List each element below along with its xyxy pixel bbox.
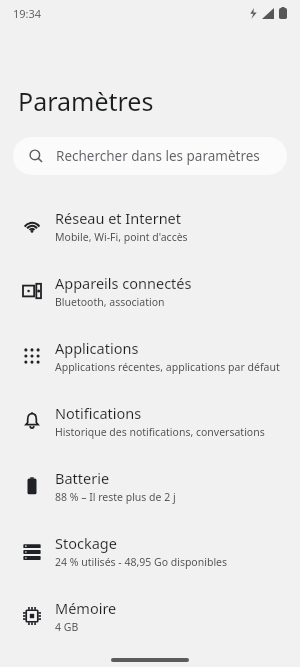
- staticText: Appareils connectés: [55, 273, 192, 293]
- staticText: Mémoire: [55, 598, 117, 618]
- staticText: 19:34: [13, 6, 42, 21]
- staticText: 24 % utilisés - 48,95 Go disponibles: [55, 555, 228, 569]
- button[interactable]: Appareils connectés: [0, 258, 300, 323]
- staticText: Paramètres: [18, 84, 154, 118]
- staticText: Réseau et Internet: [55, 208, 182, 228]
- button[interactable]: Rechercher dans les paramètres: [13, 137, 287, 175]
- staticText: Applications: [55, 338, 139, 358]
- staticText: Applications récentes, applications par …: [55, 360, 280, 374]
- button[interactable]: Mémoire: [0, 583, 300, 648]
- staticText: Stockage: [55, 533, 117, 553]
- staticText: Bluetooth, association: [55, 295, 165, 309]
- staticText: 4 GB: [55, 620, 79, 634]
- staticText: Mobile, Wi-Fi, point d'accès: [55, 230, 188, 244]
- staticText: Notifications: [55, 403, 142, 423]
- staticText: Batterie: [55, 468, 110, 488]
- button[interactable]: Applications: [0, 323, 300, 388]
- button[interactable]: Réseau et Internet: [0, 193, 300, 258]
- staticText: Historique des notifications, conversati…: [55, 425, 265, 439]
- staticText: Rechercher dans les paramètres: [56, 147, 260, 165]
- button[interactable]: Batterie: [0, 453, 300, 518]
- button[interactable]: Stockage: [0, 518, 300, 583]
- button[interactable]: Notifications: [0, 388, 300, 453]
- staticText: 88 % – Il reste plus de 2 j: [55, 490, 176, 504]
